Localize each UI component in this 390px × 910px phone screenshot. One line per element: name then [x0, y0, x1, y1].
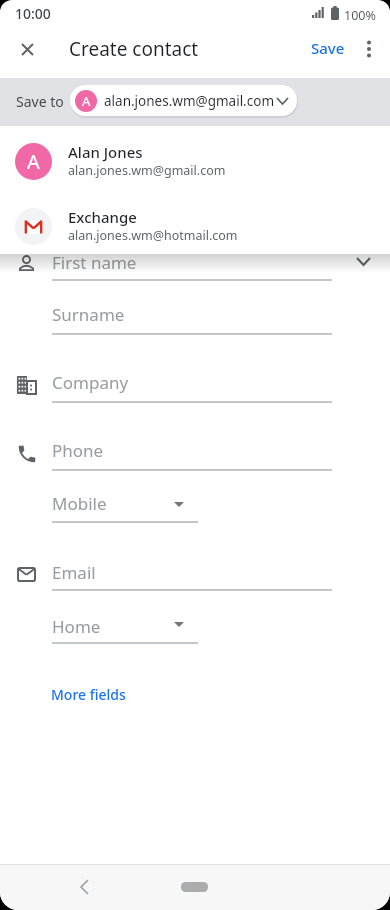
staticText: More fields [51, 685, 126, 704]
button[interactable] [44, 298, 340, 336]
button[interactable]: Exchange [0, 194, 390, 256]
button[interactable]: A [0, 130, 390, 194]
button[interactable] [44, 248, 340, 282]
staticText: alan.jones.wm@hotmail.com [68, 227, 238, 244]
staticText: Phone [52, 439, 104, 462]
staticText: Mobile [52, 492, 107, 515]
staticText: 100% [344, 7, 376, 24]
staticText: Email [52, 561, 96, 584]
button[interactable] [355, 35, 383, 63]
staticText: 10:00 [15, 4, 51, 23]
staticText: Create contact [69, 36, 199, 62]
staticText: First name [52, 251, 137, 274]
button[interactable] [44, 610, 198, 642]
staticText: Home [52, 615, 101, 638]
button[interactable] [350, 250, 378, 274]
button[interactable] [44, 490, 198, 522]
staticText: alan.jones.wm@gmail.com [68, 162, 226, 179]
button[interactable] [44, 436, 340, 473]
staticText: Save [311, 38, 345, 58]
staticText: A [27, 148, 40, 175]
button[interactable]: Save [303, 33, 353, 63]
staticText: A [82, 92, 91, 110]
button[interactable] [181, 882, 208, 892]
button[interactable]: A [70, 85, 297, 116]
button[interactable] [44, 368, 340, 405]
staticText: Alan Jones [68, 142, 143, 162]
button[interactable] [13, 35, 41, 63]
staticText: Exchange [68, 207, 137, 227]
staticText: Company [52, 371, 129, 394]
staticText: alan.jones.wm@gmail.com [104, 92, 275, 110]
staticText: Save to [16, 92, 64, 111]
button[interactable] [44, 558, 340, 593]
staticText: Surname [52, 303, 125, 326]
button[interactable] [70, 873, 98, 901]
button[interactable]: More fields [43, 678, 143, 708]
